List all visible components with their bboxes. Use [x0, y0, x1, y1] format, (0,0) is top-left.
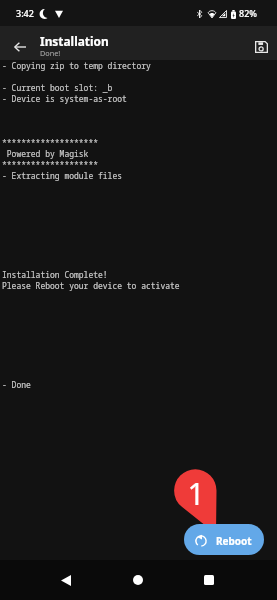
button[interactable]: Reboot	[184, 524, 264, 555]
staticText: - Done	[2, 379, 31, 390]
button[interactable]: Back	[6, 33, 34, 61]
staticText: - Copying zip to temp directory	[2, 60, 151, 71]
staticText: Installation Complete!	[2, 269, 108, 280]
staticText: - Device is system-as-root	[2, 93, 127, 104]
button[interactable]: Save	[247, 33, 275, 61]
button[interactable]: Recents	[196, 567, 222, 593]
staticText: Done!	[40, 48, 61, 58]
staticText: - Current boot slot: _b	[2, 82, 113, 93]
staticText: 1	[187, 473, 205, 514]
staticText: Please Reboot your device to activate	[2, 280, 180, 291]
button[interactable]: Back	[53, 567, 79, 593]
staticText: Powered by Magisk	[2, 148, 89, 159]
staticText: Reboot	[216, 534, 252, 548]
staticText: ********************	[2, 159, 98, 170]
staticText: 3:42	[16, 7, 34, 19]
staticText: ********************	[2, 137, 98, 148]
staticText: - Extracting module files	[2, 170, 122, 181]
button[interactable]: Home	[125, 567, 151, 593]
staticText: Installation	[40, 33, 109, 49]
staticText: 82%	[239, 7, 257, 19]
